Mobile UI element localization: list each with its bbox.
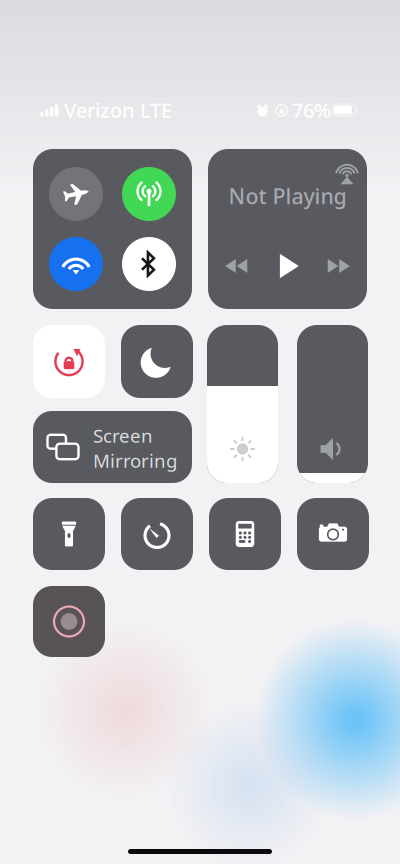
button[interactable]: Calculator — [0, 0, 400, 864]
button[interactable]: Rotation Lock — [0, 0, 400, 864]
button[interactable]: Timer — [0, 0, 400, 864]
button[interactable]: Play — [208, 149, 367, 309]
button[interactable]: Cellular Data — [33, 149, 192, 309]
button[interactable]: Brightness — [0, 0, 400, 864]
button[interactable]: Do Not Disturb — [0, 0, 400, 864]
button[interactable]: Wi-Fi — [33, 149, 192, 309]
button[interactable]: Flashlight — [0, 0, 400, 864]
staticText: 76% — [292, 97, 331, 123]
button[interactable]: Bluetooth — [33, 149, 192, 309]
button[interactable]: Rewind — [208, 149, 367, 309]
button[interactable]: AirPlay — [208, 149, 367, 309]
button[interactable]: Airplane Mode — [33, 149, 192, 309]
button[interactable]: Fast Forward — [208, 149, 367, 309]
button[interactable]: Screen Recording — [0, 0, 400, 864]
staticText: Verizon LTE — [64, 97, 172, 123]
button[interactable]: Volume — [0, 0, 400, 864]
staticText: Screen — [93, 423, 153, 448]
button[interactable]: Camera — [0, 0, 400, 864]
button[interactable]: Screen — [0, 0, 400, 864]
staticText: Mirroring — [93, 448, 177, 473]
staticText: Not Playing — [228, 182, 346, 210]
